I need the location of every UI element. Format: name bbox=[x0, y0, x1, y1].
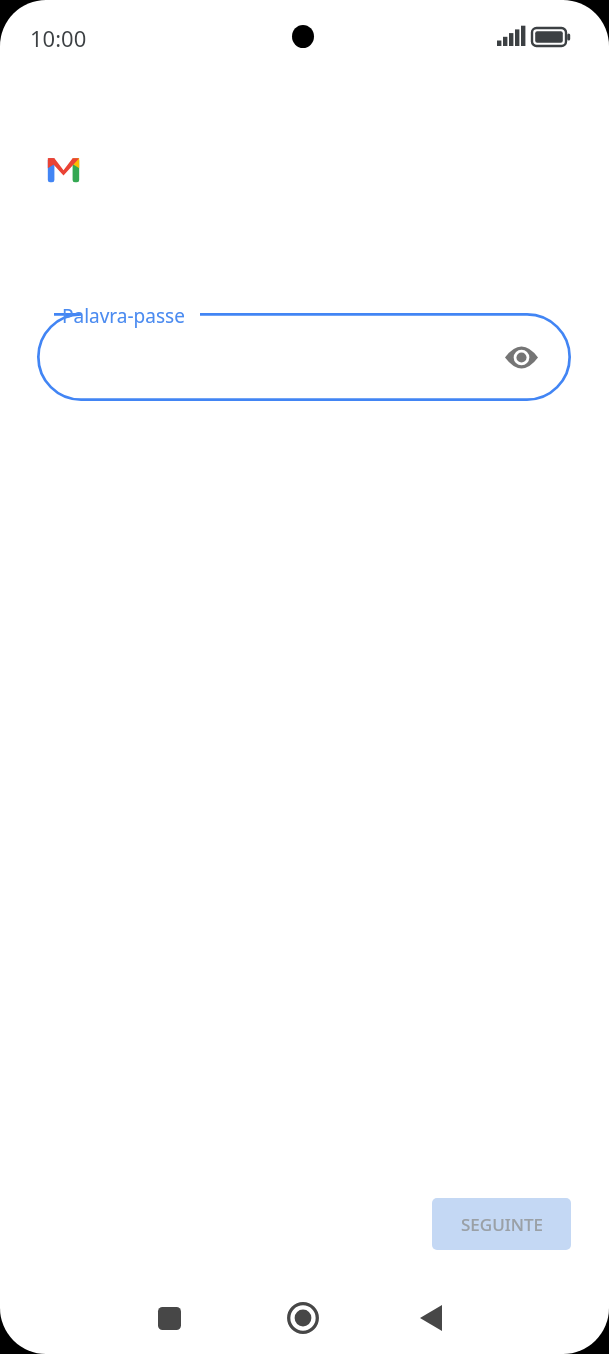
staticText: Palavra-passe bbox=[62, 303, 185, 329]
staticText: 10:00 bbox=[30, 23, 87, 53]
button[interactable]: Mostrar palavra-passe bbox=[37, 313, 571, 401]
button[interactable]: Gmail bbox=[39, 145, 88, 194]
button[interactable]: Back bbox=[407, 1294, 455, 1342]
staticText: SEGUINTE bbox=[461, 1213, 543, 1236]
button[interactable]: Home bbox=[279, 1294, 327, 1342]
button[interactable]: SEGUINTE bbox=[432, 1198, 571, 1250]
button[interactable]: Recents bbox=[145, 1294, 193, 1342]
button[interactable]: Mostrar palavra-passe bbox=[496, 332, 546, 382]
